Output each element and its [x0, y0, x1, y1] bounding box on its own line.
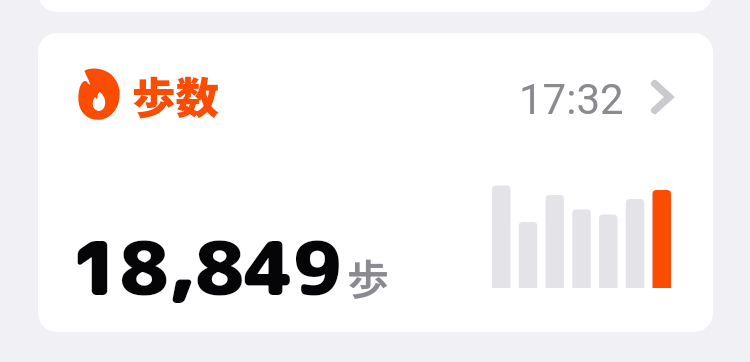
staticText: 歩数: [132, 64, 219, 127]
button[interactable]: 歩数: [38, 33, 713, 332]
staticText: 18,849: [71, 215, 342, 318]
staticText: 17:32: [519, 75, 624, 124]
other: Open step details: [651, 80, 673, 114]
button[interactable]: 17:32: [519, 70, 673, 128]
staticText: 歩: [347, 246, 390, 307]
